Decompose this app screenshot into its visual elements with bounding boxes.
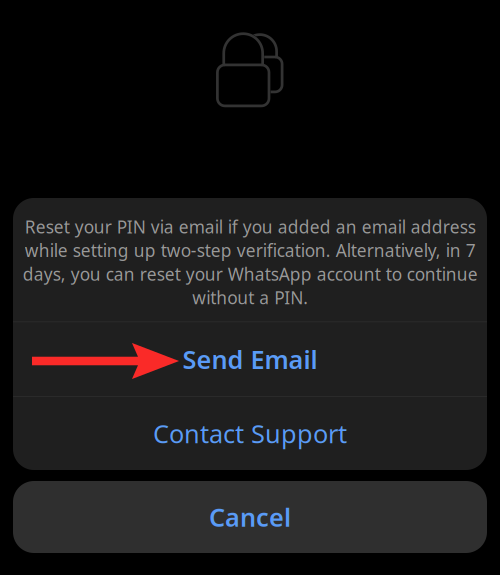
button[interactable]: Send Email [13,322,487,396]
button[interactable]: Cancel [13,481,487,553]
staticText: Send Email [182,342,317,376]
staticText: Contact Support [153,417,347,450]
staticText: Cancel [209,500,291,534]
staticText: Reset your PIN via email if you added an… [22,215,477,309]
button[interactable]: Contact Support [13,397,487,470]
